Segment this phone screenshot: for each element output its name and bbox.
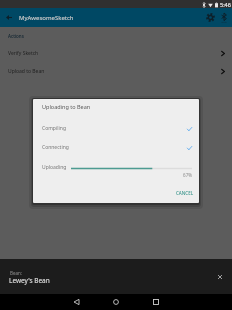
button[interactable]: Bluetooth: [216, 8, 232, 27]
staticText: Compiling: [42, 125, 66, 132]
button[interactable]: Upload to Bean: [0, 62, 232, 80]
button[interactable]: Recents: [136, 294, 176, 310]
staticText: Bean:: [10, 270, 22, 276]
button[interactable]: Home: [96, 294, 136, 310]
button[interactable]: CANCEL: [172, 188, 198, 198]
staticText: Lewey's Bean: [9, 276, 50, 285]
button[interactable]: Settings: [203, 8, 218, 27]
button[interactable]: Back: [56, 294, 96, 310]
button[interactable]: Verify Sketch: [0, 44, 232, 62]
staticText: Connecting: [42, 144, 69, 151]
staticText: 67%: [33, 172, 192, 178]
staticText: CANCEL: [176, 190, 194, 196]
staticText: Uploading: [42, 164, 67, 171]
button[interactable]: Back: [0, 8, 18, 27]
button[interactable]: Close: [214, 271, 226, 283]
staticText: MyAwesomeSketch: [19, 14, 74, 22]
staticText: Verify Sketch: [8, 50, 39, 57]
staticText: Upload to Bean: [8, 68, 45, 75]
staticText: Actions: [8, 33, 24, 39]
staticText: 5:46: [220, 1, 231, 8]
staticText: Uploading to Bean: [42, 103, 91, 110]
